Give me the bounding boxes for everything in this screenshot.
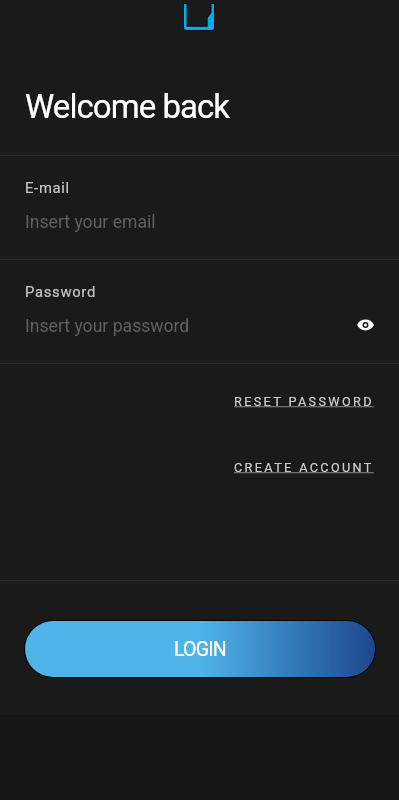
staticText: CREATE ACCOUNT: [234, 460, 374, 475]
button[interactable]: Password: [0, 260, 399, 363]
button[interactable]: LOGIN: [25, 621, 375, 677]
staticText: E-mail: [25, 179, 70, 196]
button[interactable]: CREATE ACCOUNT: [226, 451, 382, 484]
staticText: LOGIN: [174, 638, 226, 661]
staticText: Welcome back: [25, 87, 230, 126]
button[interactable]: Show password: [348, 308, 382, 342]
button[interactable]: E-mail: [0, 156, 399, 259]
staticText: Insert your email: [25, 212, 156, 233]
staticText: Insert your password: [25, 316, 190, 337]
staticText: RESET PASSWORD: [234, 394, 374, 409]
staticText: Password: [25, 283, 96, 300]
button[interactable]: RESET PASSWORD: [226, 385, 382, 418]
